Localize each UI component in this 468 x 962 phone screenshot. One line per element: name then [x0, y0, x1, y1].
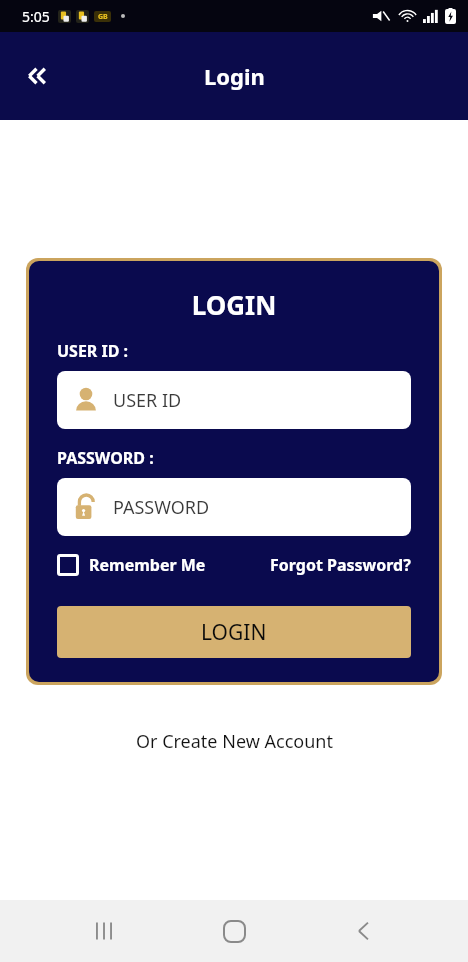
- button[interactable]: Back: [12, 52, 60, 100]
- button[interactable]: USER ID: [57, 371, 411, 429]
- staticText: Forgot Password?: [270, 554, 411, 576]
- staticText: LOGIN: [57, 287, 411, 322]
- staticText: USER ID :: [57, 340, 129, 362]
- staticText: LOGIN: [201, 618, 267, 647]
- staticText: GB: [98, 12, 108, 22]
- button[interactable]: LOGIN: [57, 606, 411, 658]
- staticText: 5:05: [22, 7, 50, 26]
- staticText: USER ID: [113, 388, 182, 413]
- staticText: PASSWORD: [113, 495, 210, 520]
- staticText: Remember Me: [89, 554, 206, 576]
- button[interactable]: Or Create New Account: [0, 729, 468, 754]
- button[interactable]: Recent apps: [78, 905, 130, 957]
- button[interactable]: Back: [338, 905, 390, 957]
- button[interactable]: PASSWORD: [57, 478, 411, 536]
- button[interactable]: Home: [208, 905, 260, 957]
- staticText: Login: [204, 61, 265, 91]
- staticText: PASSWORD :: [57, 447, 154, 469]
- button[interactable]: Remember Me: [57, 554, 206, 576]
- staticText: Or Create New Account: [136, 729, 333, 754]
- button[interactable]: Forgot Password?: [270, 554, 411, 576]
